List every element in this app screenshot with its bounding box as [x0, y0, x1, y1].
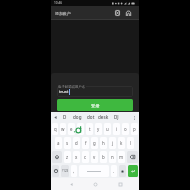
button[interactable]: b — [100, 151, 107, 163]
button[interactable]: Emoji — [52, 165, 59, 177]
button[interactable]: i — [113, 123, 120, 135]
button[interactable]: l — [127, 137, 134, 149]
button[interactable]: dog — [71, 112, 84, 122]
staticText: d — [75, 140, 78, 146]
staticText: j — [112, 140, 114, 146]
button[interactable]: dot — [84, 112, 97, 122]
button[interactable]: e — [68, 123, 75, 135]
button[interactable]: Enter — [128, 165, 138, 177]
staticText: q — [54, 126, 57, 132]
button[interactable]: Previous suggestions — [53, 115, 58, 120]
button[interactable]: Scan QR code — [112, 8, 122, 18]
staticText: 添加账户 — [55, 11, 71, 16]
staticText: c — [84, 154, 87, 160]
staticText: a — [57, 140, 60, 146]
staticText: 10:46 — [54, 1, 63, 5]
button[interactable]: m — [118, 151, 125, 163]
button[interactable]: desk — [97, 112, 110, 122]
button[interactable]: Backspace — [127, 151, 138, 163]
staticText: e — [70, 126, 73, 132]
staticText: . — [113, 168, 115, 174]
button[interactable]: Back — [66, 179, 76, 189]
staticText: desk — [98, 114, 109, 120]
button[interactable]: s — [64, 137, 71, 149]
button[interactable]: p — [131, 123, 138, 135]
staticText: r — [80, 126, 82, 132]
staticText: 登录 — [91, 103, 100, 108]
staticText: trust — [59, 89, 69, 95]
button[interactable]: Shift — [52, 151, 62, 163]
staticText: w — [61, 126, 65, 132]
staticText: f — [85, 140, 87, 146]
button[interactable]: , — [71, 165, 77, 177]
staticText: ?123 — [62, 169, 69, 173]
button[interactable]: D — [58, 112, 71, 122]
staticText: t — [89, 126, 91, 132]
staticText: p — [133, 126, 136, 132]
button[interactable]: n — [109, 151, 116, 163]
button[interactable]: w — [60, 123, 66, 135]
button[interactable]: t — [86, 123, 93, 135]
staticText: n — [111, 154, 114, 160]
button[interactable]: More options — [132, 115, 137, 120]
button[interactable]: h — [100, 137, 107, 149]
staticText: DJ — [114, 114, 119, 120]
staticText: 电子邮箱或用户名 — [58, 85, 86, 89]
button[interactable]: v — [91, 151, 98, 163]
button[interactable]: Voice input — [119, 165, 126, 177]
staticText: dog — [73, 114, 82, 120]
staticText: m — [119, 154, 124, 160]
button[interactable]: . — [111, 165, 117, 177]
button[interactable]: Home — [123, 8, 133, 18]
button[interactable]: u — [104, 123, 111, 135]
staticText: u — [106, 126, 109, 132]
button[interactable]: o — [122, 123, 129, 135]
button[interactable]: Recent apps — [115, 179, 125, 189]
staticText: z — [66, 154, 69, 160]
button[interactable]: 登录 — [57, 99, 133, 111]
button[interactable]: DJ — [110, 112, 123, 122]
staticText: b — [102, 154, 105, 160]
staticText: g — [93, 140, 96, 146]
staticText: D — [63, 114, 67, 120]
button[interactable]: d — [73, 137, 80, 149]
staticText: v — [93, 154, 96, 160]
staticText: l — [130, 140, 132, 146]
button[interactable]: a — [55, 137, 62, 149]
staticText: , — [73, 168, 75, 174]
staticText: s — [66, 140, 69, 146]
staticText: o — [124, 126, 127, 132]
staticText: i — [116, 126, 118, 132]
staticText: h — [102, 140, 105, 146]
button[interactable]: q — [52, 123, 58, 135]
button[interactable]: g — [91, 137, 98, 149]
staticText: dot — [87, 114, 95, 120]
button[interactable]: Space — [79, 165, 109, 177]
button[interactable]: Symbols — [61, 165, 69, 177]
button[interactable]: c — [82, 151, 89, 163]
button[interactable]: x — [73, 151, 80, 163]
button[interactable]: r — [77, 123, 84, 135]
button[interactable]: Home — [90, 179, 100, 189]
button[interactable]: y — [95, 123, 102, 135]
staticText: k — [120, 140, 123, 146]
staticText: y — [97, 126, 100, 132]
button[interactable]: f — [82, 137, 89, 149]
button[interactable]: j — [109, 137, 116, 149]
staticText: x — [75, 154, 78, 160]
button[interactable]: z — [64, 151, 71, 163]
button[interactable]: k — [118, 137, 125, 149]
